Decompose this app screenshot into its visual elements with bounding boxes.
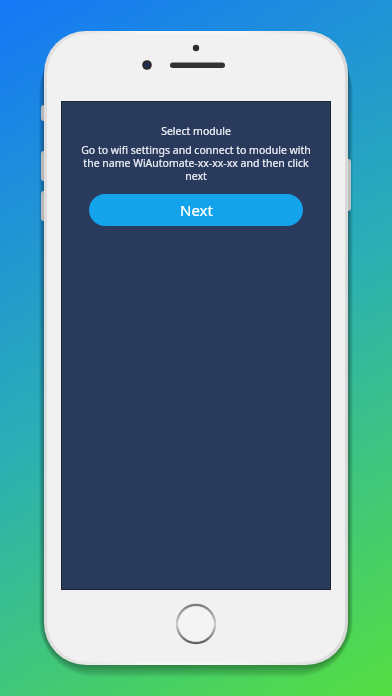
staticText: Next — [180, 200, 213, 220]
staticText: Go to wifi settings and connect to modul… — [72, 143, 320, 183]
staticText: Select module — [161, 124, 231, 138]
button[interactable]: Next — [89, 194, 303, 226]
